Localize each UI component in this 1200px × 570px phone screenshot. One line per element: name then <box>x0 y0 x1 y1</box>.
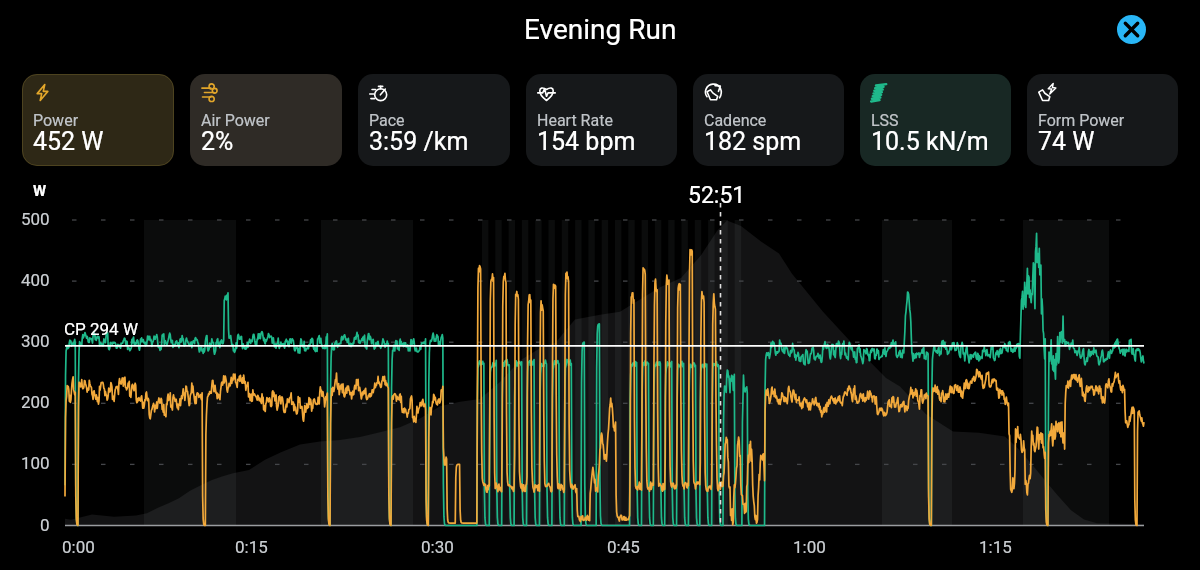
staticText: Power <box>33 111 79 130</box>
button[interactable]: Air Power <box>190 74 342 166</box>
staticText: Air Power <box>201 111 270 130</box>
button[interactable]: Heart Rate <box>526 74 677 166</box>
button[interactable]: Pace <box>358 74 510 166</box>
staticText: 3:59 /km <box>369 127 469 156</box>
staticText: 0:15 <box>235 537 268 557</box>
button[interactable]: LSS <box>860 74 1011 166</box>
staticText: CP 294 W <box>64 319 138 339</box>
staticText: 100 <box>21 453 50 473</box>
staticText: 182 spm <box>704 127 802 156</box>
staticText: 0:45 <box>607 537 640 557</box>
staticText: 300 <box>21 331 50 351</box>
staticText: 2% <box>201 127 234 156</box>
staticText: Evening Run <box>524 13 677 46</box>
staticText: 500 <box>21 209 50 229</box>
staticText: 1:00 <box>793 537 826 557</box>
staticText: 0:00 <box>62 537 95 557</box>
staticText: 74 W <box>1038 127 1095 156</box>
button[interactable]: Close <box>1117 15 1146 44</box>
staticText: 52:51 <box>688 182 746 209</box>
staticText: Pace <box>369 111 405 130</box>
staticText: LSS <box>871 111 899 130</box>
button[interactable]: Cadence <box>693 74 844 166</box>
button[interactable]: Form Power <box>1027 74 1178 166</box>
staticText: W <box>33 182 47 200</box>
staticText: 200 <box>21 392 50 412</box>
staticText: Heart Rate <box>537 111 613 130</box>
staticText: 0:30 <box>421 537 454 557</box>
staticText: 10.5 kN/m <box>871 127 989 156</box>
staticText: Cadence <box>704 111 767 130</box>
staticText: 452 W <box>33 127 104 156</box>
button[interactable]: Power <box>22 74 174 166</box>
staticText: 0 <box>40 515 50 535</box>
staticText: 1:15 <box>979 537 1012 557</box>
staticText: Form Power <box>1038 111 1125 130</box>
staticText: 154 bpm <box>537 127 636 156</box>
staticText: 400 <box>21 270 50 290</box>
